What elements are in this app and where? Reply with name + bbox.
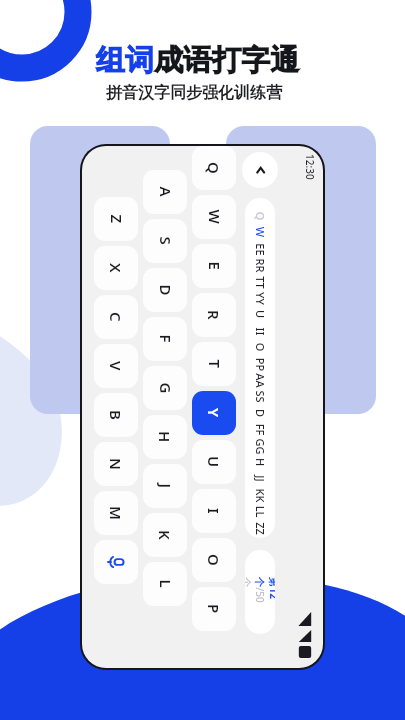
staticText: OO — [252, 339, 268, 355]
staticText: A — [155, 186, 175, 197]
button[interactable]: B — [94, 393, 138, 437]
staticText: O — [204, 554, 224, 566]
staticText: F — [155, 334, 175, 343]
staticText: D — [155, 284, 175, 295]
button[interactable]: R — [192, 293, 236, 337]
staticText: S — [155, 236, 175, 245]
button[interactable]: J — [143, 464, 187, 508]
staticText: AA — [253, 373, 268, 388]
button[interactable]: Voice input — [94, 540, 138, 584]
staticText: N — [106, 458, 126, 470]
staticText: 组词成语打字通 — [96, 42, 299, 79]
staticText: KK — [252, 488, 267, 502]
staticText: FF — [252, 423, 267, 435]
staticText: W — [204, 209, 224, 224]
staticText: R — [204, 310, 224, 320]
button[interactable]: E — [192, 244, 236, 288]
button[interactable]: A — [143, 170, 187, 214]
staticText: T — [204, 359, 224, 368]
staticText: V — [106, 361, 126, 371]
staticText: J — [155, 483, 175, 488]
staticText: YY — [253, 292, 268, 305]
staticText: LL — [252, 505, 267, 517]
button[interactable]: C — [94, 295, 138, 339]
button[interactable]: I — [192, 489, 236, 533]
button[interactable]: Back — [242, 152, 278, 188]
button[interactable]: Q — [192, 146, 236, 190]
staticText: II — [252, 327, 267, 335]
button[interactable]: K — [143, 513, 187, 557]
staticText: H — [155, 431, 175, 443]
button[interactable]: H — [143, 415, 187, 459]
button[interactable]: X — [94, 246, 138, 290]
button[interactable]: D — [143, 268, 187, 312]
staticText: ZZ — [253, 522, 268, 535]
button[interactable]: N — [94, 442, 138, 486]
button[interactable]: M — [94, 491, 138, 535]
staticText: RR — [252, 258, 267, 272]
button[interactable]: Z — [94, 197, 138, 241]
button[interactable]: L — [143, 562, 187, 606]
button[interactable]: W — [192, 195, 236, 239]
button[interactable]: F — [143, 317, 187, 361]
staticText: PP — [252, 357, 267, 371]
staticText: L — [155, 579, 175, 588]
staticText: X — [106, 263, 126, 273]
staticText: WW — [252, 224, 268, 240]
button[interactable]: 第12个/50个 — [245, 550, 275, 634]
button[interactable]: QQ — [245, 198, 275, 538]
staticText: SS — [253, 390, 268, 403]
staticText: EE — [253, 243, 268, 256]
staticText: C — [106, 312, 126, 322]
staticText: B — [106, 410, 126, 420]
staticText: JJ — [253, 475, 268, 482]
button[interactable]: U — [192, 440, 236, 484]
button[interactable]: V — [94, 344, 138, 388]
staticText: QQ — [252, 208, 268, 224]
staticText: 第12个/50个 — [245, 577, 275, 607]
staticText: GG — [252, 438, 267, 454]
staticText: DD — [252, 405, 268, 421]
staticText: P — [204, 604, 224, 614]
staticText: Q — [204, 162, 224, 174]
button[interactable]: Y — [192, 391, 236, 435]
staticText: E — [204, 261, 224, 270]
staticText: TT — [253, 276, 268, 289]
staticText: 12:30 — [303, 154, 317, 180]
staticText: Z — [106, 214, 126, 223]
staticText: G — [155, 382, 175, 393]
button[interactable]: G — [143, 366, 187, 410]
staticText: HH — [252, 454, 268, 470]
staticText: U — [204, 456, 224, 468]
staticText: Y — [204, 408, 224, 418]
staticText: 拼音汉字同步强化训练营 — [106, 83, 282, 103]
button[interactable]: T — [192, 342, 236, 386]
button[interactable]: S — [143, 219, 187, 263]
button[interactable]: P — [192, 587, 236, 631]
staticText: K — [155, 530, 175, 540]
button[interactable]: O — [192, 538, 236, 582]
staticText: I — [204, 508, 224, 514]
staticText: UU — [252, 306, 268, 322]
staticText: M — [106, 506, 126, 520]
